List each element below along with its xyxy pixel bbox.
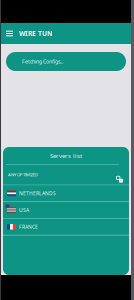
button[interactable]: Menu: [3, 28, 16, 39]
staticText: Servers list: [50, 151, 82, 160]
staticText: USA: [19, 207, 29, 213]
staticText: NETHERLANDS: [19, 190, 56, 197]
staticText: Fetching Configs...: [22, 58, 63, 65]
button[interactable]: ANY OPTIMIZED: [3, 165, 129, 185]
staticText: WIRE TUN: [19, 29, 52, 38]
button[interactable]: NETHERLANDS: [3, 185, 129, 201]
button[interactable]: USA: [3, 202, 129, 218]
staticText: FRANCE: [19, 223, 38, 230]
button[interactable]: Fetching Configs...: [6, 52, 126, 71]
button[interactable]: FRANCE: [3, 219, 129, 235]
staticText: ANY OPTIMIZED: [8, 172, 38, 178]
